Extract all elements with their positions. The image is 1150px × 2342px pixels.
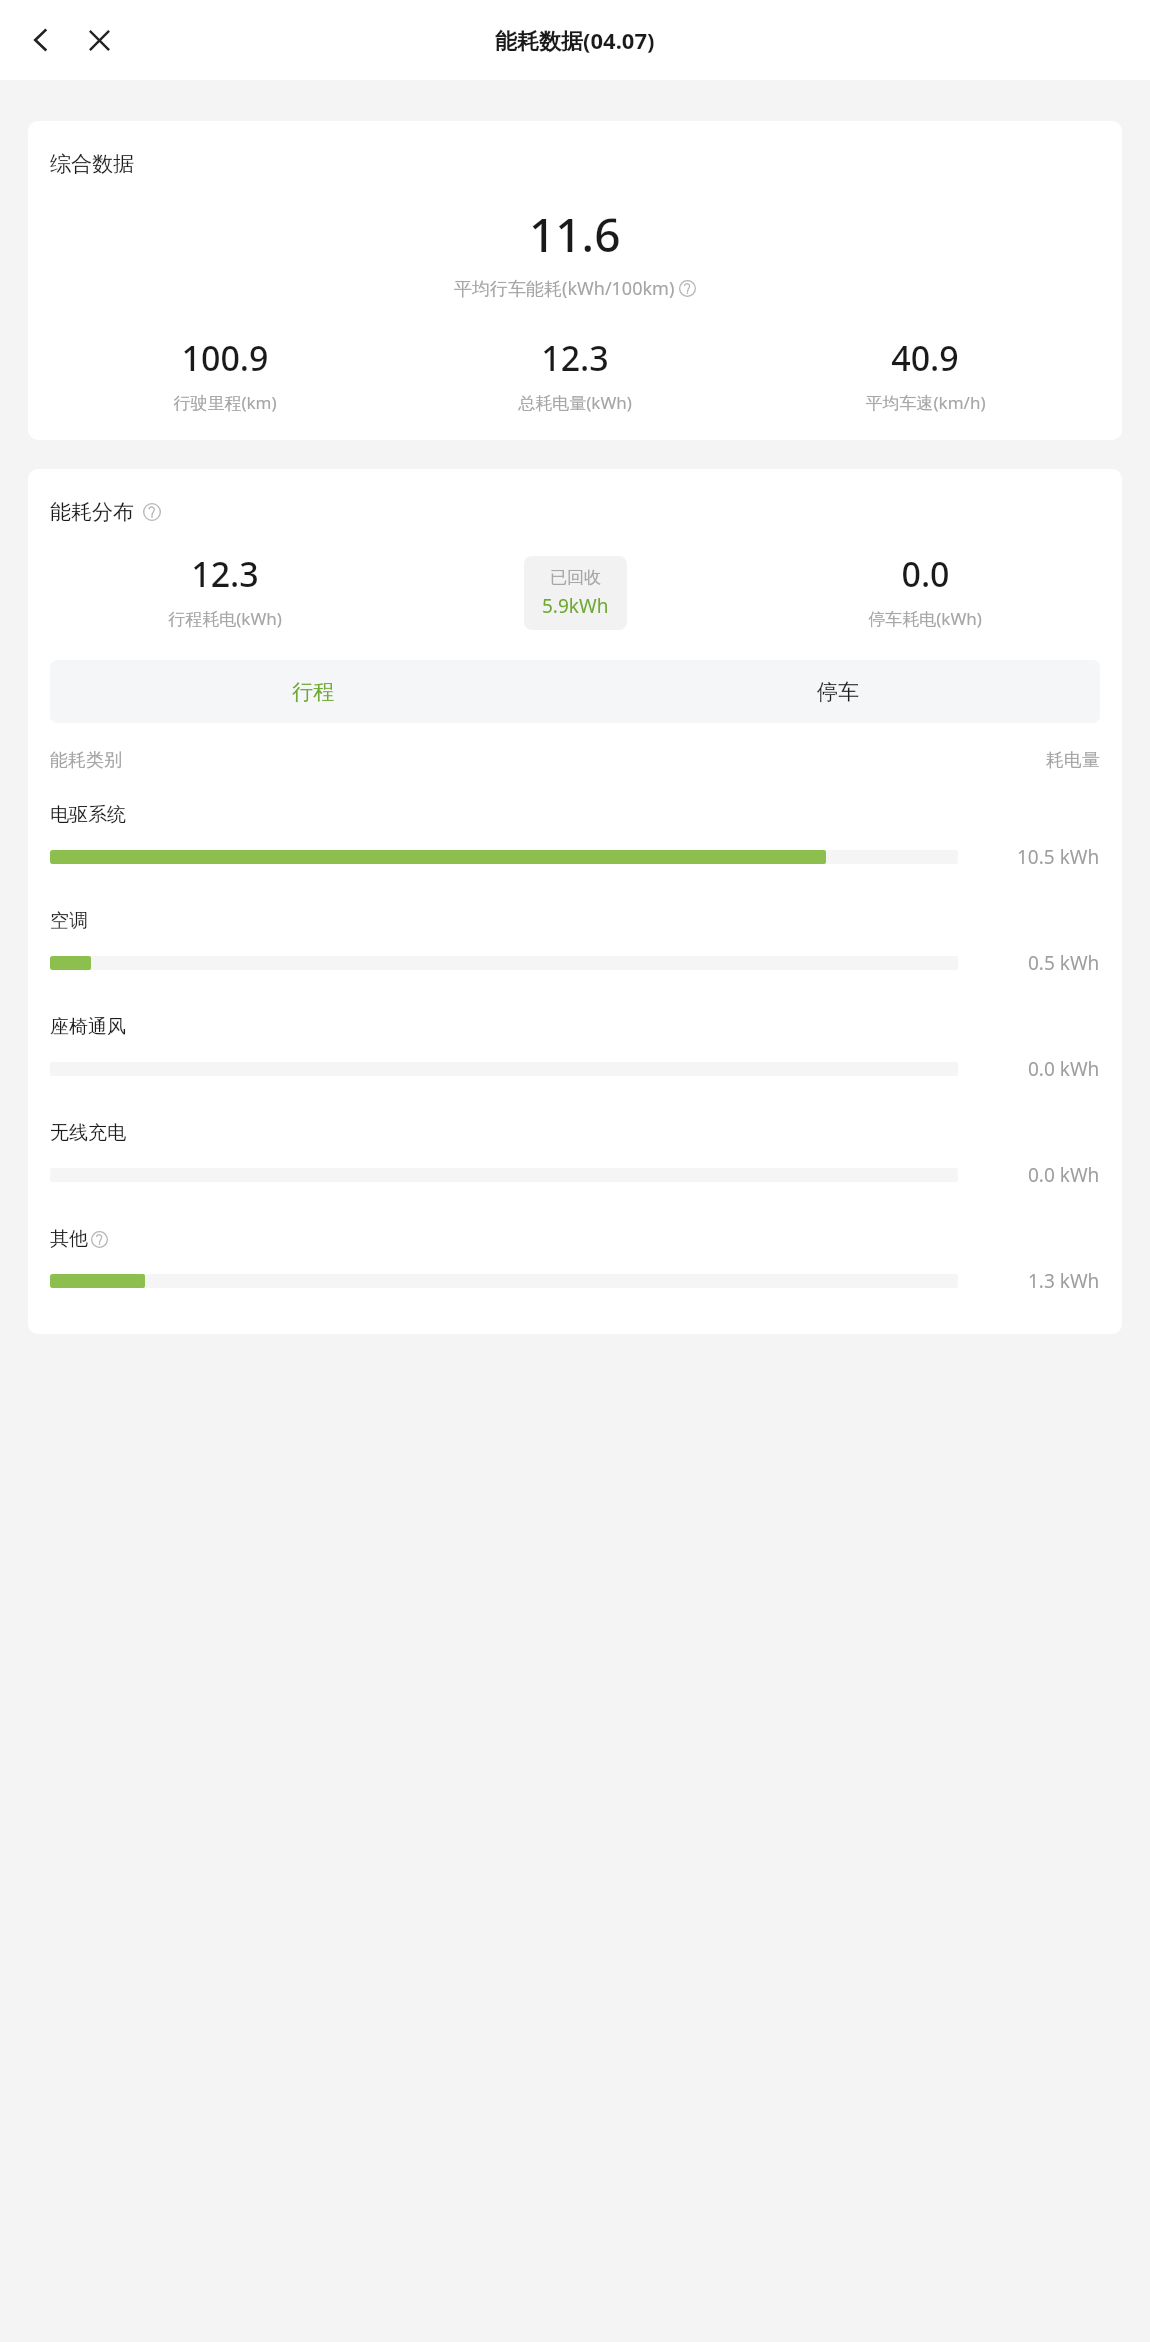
button[interactable]: 停车 (575, 660, 1100, 723)
staticText: 行程耗电(kWh) (168, 607, 282, 630)
button[interactable]: Close (76, 17, 122, 63)
button[interactable]: Back (18, 17, 64, 63)
other: Help (143, 503, 161, 521)
staticText: 无线充电 (50, 1121, 126, 1145)
staticText: 停车耗电(kWh) (868, 607, 982, 630)
button[interactable]: 行程 (50, 660, 575, 723)
staticText: 0.0 kWh (1028, 1162, 1100, 1188)
staticText: 0.0 kWh (1028, 1056, 1100, 1082)
staticText: 11.6 (529, 203, 621, 266)
staticText: 行驶里程(km) (173, 391, 277, 414)
staticText: 12.3 (191, 551, 259, 597)
other: Help (679, 280, 696, 297)
staticText: 0.0 (901, 551, 950, 597)
staticText: 平均行车能耗(kWh/100km) (454, 276, 675, 301)
staticText: 综合数据 (50, 151, 134, 177)
staticText: 平均车速(km/h) (865, 391, 986, 414)
other: Help (91, 1231, 108, 1248)
staticText: 40.9 (891, 335, 959, 381)
staticText: 停车 (817, 679, 859, 705)
staticText: 耗电量 (1046, 749, 1100, 772)
staticText: 总耗电量(kWh) (518, 391, 632, 414)
staticText: 能耗类别 (50, 749, 122, 772)
staticText: 电驱系统 (50, 803, 126, 827)
staticText: 1.3 kWh (1028, 1268, 1100, 1294)
staticText: 能耗数据(04.07) (495, 25, 655, 55)
staticText: 5.9kWh (542, 593, 609, 619)
staticText: 100.9 (181, 335, 269, 381)
staticText: 12.3 (541, 335, 609, 381)
staticText: 行程 (292, 679, 334, 705)
staticText: 空调 (50, 909, 88, 933)
staticText: 座椅通风 (50, 1015, 126, 1039)
staticText: 其他 (50, 1227, 88, 1251)
staticText: 已回收 (550, 567, 601, 588)
staticText: 能耗分布 (50, 499, 134, 525)
staticText: 10.5 kWh (1017, 844, 1100, 870)
staticText: 0.5 kWh (1028, 950, 1100, 976)
